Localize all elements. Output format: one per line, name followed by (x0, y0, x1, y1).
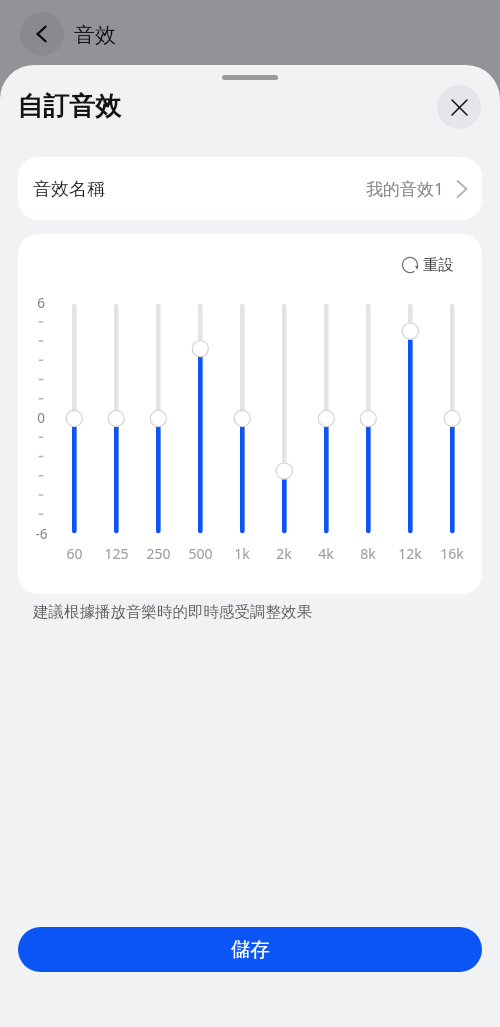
button[interactable]: Back (20, 12, 64, 56)
staticText: -6 (35, 525, 48, 543)
staticText: 0 (37, 409, 45, 427)
staticText: 2k (276, 544, 292, 563)
staticText: 250 (146, 544, 171, 563)
staticText: 125 (104, 544, 129, 563)
button[interactable]: 8k band (347, 297, 389, 567)
button[interactable]: 250 band (137, 297, 179, 567)
staticText: 16k (440, 544, 464, 563)
button[interactable]: 16k band (431, 297, 473, 567)
staticText: 我的音效1 (366, 177, 444, 200)
staticText: 儲存 (231, 937, 270, 962)
staticText: 重設 (423, 255, 454, 275)
button[interactable]: 音效名稱 (18, 157, 482, 220)
button[interactable]: 60 band (53, 297, 95, 567)
staticText: 8k (360, 544, 376, 563)
staticText: 500 (188, 544, 213, 563)
staticText: 6 (37, 294, 45, 312)
button[interactable]: 500 band (179, 297, 221, 567)
button[interactable]: Close (437, 85, 481, 129)
staticText: 1k (234, 544, 250, 563)
staticText: 自訂音效 (17, 90, 121, 123)
button[interactable]: 重設 (400, 249, 454, 281)
staticText: 音效 (74, 22, 116, 48)
staticText: 60 (66, 544, 83, 563)
staticText: 音效名稱 (33, 178, 105, 201)
button[interactable]: 125 band (95, 297, 137, 567)
button[interactable]: 2k band (263, 297, 305, 567)
staticText: 建議根據播放音樂時的即時感受調整效果 (33, 602, 312, 622)
staticText: 12k (398, 544, 422, 563)
button[interactable]: 儲存 (18, 927, 482, 972)
button[interactable]: 4k band (305, 297, 347, 567)
staticText: 4k (318, 544, 334, 563)
button[interactable]: 1k band (221, 297, 263, 567)
button[interactable]: 12k band (389, 297, 431, 567)
